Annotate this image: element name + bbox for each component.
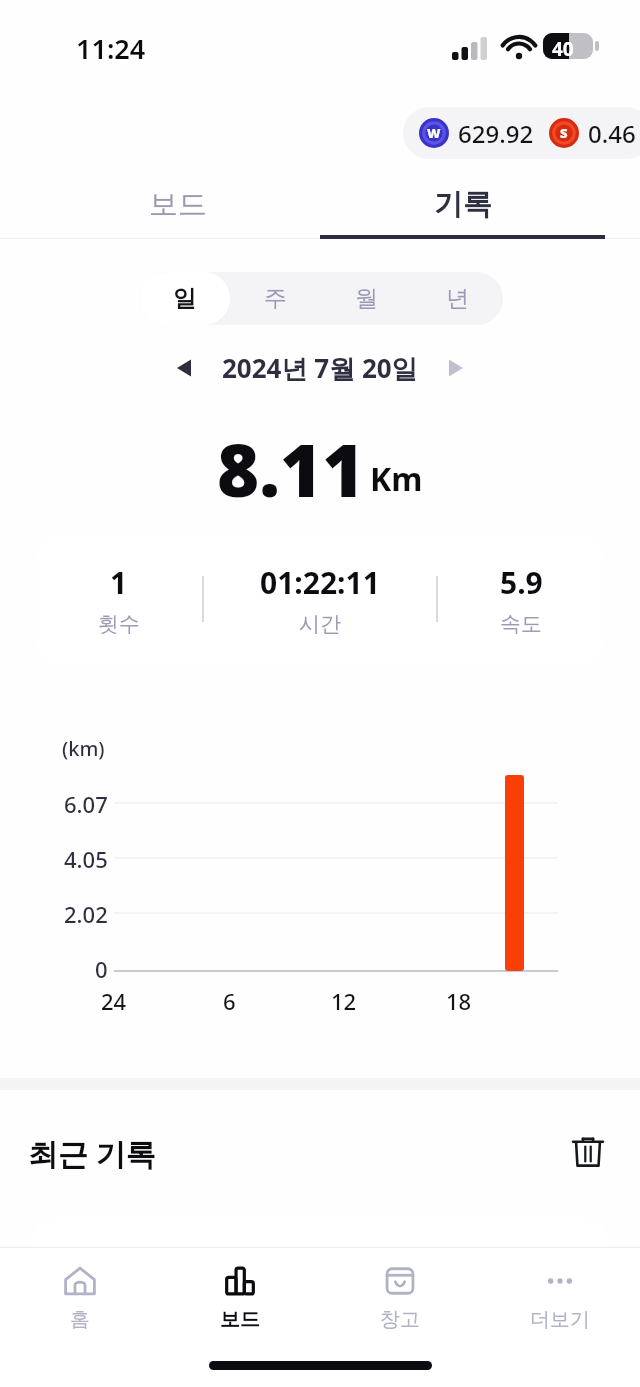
staticText: 8.11 <box>217 420 365 508</box>
button[interactable]: 기록 <box>320 168 605 240</box>
staticText: 속도 <box>500 611 542 637</box>
button[interactable]: Delete records <box>560 1124 616 1180</box>
staticText: 18 <box>446 986 472 1014</box>
staticText: 40 <box>552 36 574 62</box>
staticText: 01:22:11 <box>260 562 380 603</box>
staticText: 더보기 <box>530 1307 590 1332</box>
staticText: 2.02 <box>64 899 108 927</box>
staticText: 일 <box>173 284 196 313</box>
staticText: 홈 <box>70 1307 90 1332</box>
staticText: 시간 <box>299 611 341 637</box>
staticText: S <box>560 124 568 142</box>
staticText: 창고 <box>380 1307 420 1332</box>
staticText: Km <box>370 457 423 501</box>
button[interactable]: Previous day <box>162 346 206 390</box>
staticText: 6 <box>223 986 236 1014</box>
button[interactable]: 년 <box>412 272 503 325</box>
staticText: 0.46 <box>588 117 636 150</box>
staticText: 6.07 <box>64 789 108 817</box>
button[interactable]: Next day <box>434 346 478 390</box>
staticText: 기록 <box>434 186 492 223</box>
button[interactable]: 주 <box>230 272 321 325</box>
staticText: 4.05 <box>64 844 108 872</box>
staticText: 629.92 <box>458 117 534 150</box>
staticText: 24 <box>101 986 127 1014</box>
button[interactable]: W <box>403 107 640 159</box>
staticText: 11:24 <box>76 30 146 67</box>
button[interactable]: 홈 <box>0 1247 160 1347</box>
staticText: 0 <box>95 954 108 982</box>
staticText: 횟수 <box>98 611 140 637</box>
staticText: 월 <box>355 284 378 313</box>
button[interactable]: 보드 <box>160 1247 320 1347</box>
button[interactable]: 보드 <box>35 168 320 240</box>
staticText: 보드 <box>149 186 207 223</box>
button[interactable]: 더보기 <box>480 1247 640 1347</box>
staticText: 년 <box>446 284 469 313</box>
staticText: 보드 <box>220 1307 260 1332</box>
staticText: 5.9 <box>500 562 543 603</box>
staticText: 2024년 7월 20일 <box>222 350 418 386</box>
staticText: 주 <box>264 284 287 313</box>
staticText: 1 <box>110 562 128 603</box>
button[interactable]: 일 <box>139 272 230 325</box>
button[interactable]: 창고 <box>320 1247 480 1347</box>
button[interactable]: 1 <box>36 534 604 664</box>
staticText: (km) <box>62 735 105 762</box>
staticText: 12 <box>331 986 357 1014</box>
button[interactable]: 월 <box>321 272 412 325</box>
staticText: W <box>427 124 441 142</box>
staticText: 최근 기록 <box>28 1133 156 1174</box>
